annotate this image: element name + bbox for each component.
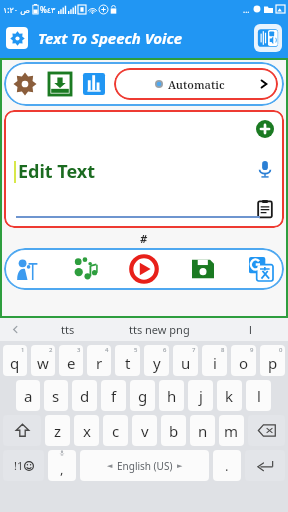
button[interactable]: Automatic [114,68,278,100]
staticText: t [125,353,131,373]
staticText: n [198,421,208,441]
staticText: ... [243,4,250,15]
staticText: c [112,421,120,441]
staticText: r [96,353,103,373]
button[interactable]: tts new png [106,318,212,341]
staticText: a [24,386,33,406]
staticText: 2 [49,346,53,354]
staticText: 0 [279,346,283,354]
button[interactable]: 9 [231,345,256,376]
button[interactable]: Voice translate [254,24,282,52]
button[interactable]: g [130,380,155,411]
button[interactable]: Previous suggestions [0,318,30,341]
staticText: s [52,386,60,406]
button[interactable]: Translate [244,252,278,286]
button[interactable]: 5 [115,345,140,376]
staticText: Automatic [168,77,225,92]
staticText: . [225,457,229,475]
button[interactable]: Paste from clipboard [254,198,276,220]
button[interactable]: Download [46,70,74,98]
button[interactable]: v [132,415,157,446]
button[interactable]: Add [4,110,284,228]
staticText: 8 [221,346,225,354]
button[interactable]: Settings [10,69,40,99]
staticText: l [257,386,261,406]
button[interactable]: Backspace [248,415,285,446]
button[interactable]: 6 [144,345,169,376]
staticText: v [141,421,149,441]
staticText: j [199,386,203,406]
staticText: # [140,231,148,246]
staticText: ► [177,462,183,470]
button[interactable]: Speak [10,252,44,286]
button[interactable]: l [212,318,288,341]
staticText: m [224,421,239,441]
staticText: e [67,353,76,373]
button[interactable]: Statistics [80,70,108,98]
button[interactable]: z [45,415,70,446]
staticText: 1 [21,346,25,354]
button[interactable]: c [103,415,128,446]
button[interactable]: 2 [31,345,55,376]
button[interactable]: Save [186,252,220,286]
button[interactable]: x [74,415,99,446]
staticText: !1 [14,458,24,473]
button[interactable]: a [16,380,40,411]
button[interactable]: Play [127,252,161,286]
staticText: 5 [134,346,138,354]
staticText: h [167,386,177,406]
button[interactable]: , [48,450,76,481]
staticText: o [239,353,249,373]
button[interactable]: 3 [59,345,83,376]
button[interactable]: Music [69,252,103,286]
staticText: 7 [192,346,196,354]
staticText: q [10,353,20,373]
button[interactable]: n [190,415,215,446]
button[interactable]: Shift [3,415,41,446]
staticText: 9 [250,346,254,354]
staticText: ص ١:٢٠ [3,4,30,15]
staticText: tts [61,322,75,337]
button[interactable]: 4 [87,345,111,376]
button[interactable]: j [188,380,213,411]
staticText: English (US) [117,459,173,473]
button[interactable]: 1 [3,345,27,376]
staticText: 3 [77,346,81,354]
staticText: k [225,386,234,406]
button[interactable]: 8 [202,345,227,376]
staticText: w [37,353,49,373]
button[interactable]: Enter [245,450,285,481]
button[interactable]: b [161,415,186,446]
staticText: 6 [163,346,167,354]
button[interactable]: s [44,380,68,411]
button[interactable]: 0 [260,345,285,376]
staticText: g [138,386,148,406]
button[interactable]: f [101,380,126,411]
staticText: Text To Speech Voice [38,28,183,48]
button[interactable]: Symbols and emoji [3,450,44,481]
button[interactable]: h [159,380,184,411]
button[interactable]: tts [30,318,106,341]
button[interactable]: Voice input [254,158,276,180]
staticText: d [80,386,90,406]
staticText: x [83,421,91,441]
button[interactable]: d [72,380,97,411]
button[interactable]: Settings [6,27,28,49]
staticText: , [60,460,64,478]
staticText: ◄ [107,462,113,470]
staticText: l [249,322,252,337]
button[interactable]: 7 [173,345,198,376]
button[interactable]: Add [254,118,276,140]
staticText: 4 [105,346,109,354]
button[interactable]: m [219,415,244,446]
staticText: y [153,353,161,373]
button[interactable]: l [246,380,271,411]
staticText: f [111,386,117,406]
button[interactable]: k [217,380,242,411]
staticText: tts new png [129,322,190,337]
button[interactable]: ◄ [80,450,209,481]
staticText: %٤٣ [40,4,56,15]
staticText: Edit Text [18,159,96,184]
button[interactable]: . [213,450,241,481]
staticText: z [54,421,62,441]
